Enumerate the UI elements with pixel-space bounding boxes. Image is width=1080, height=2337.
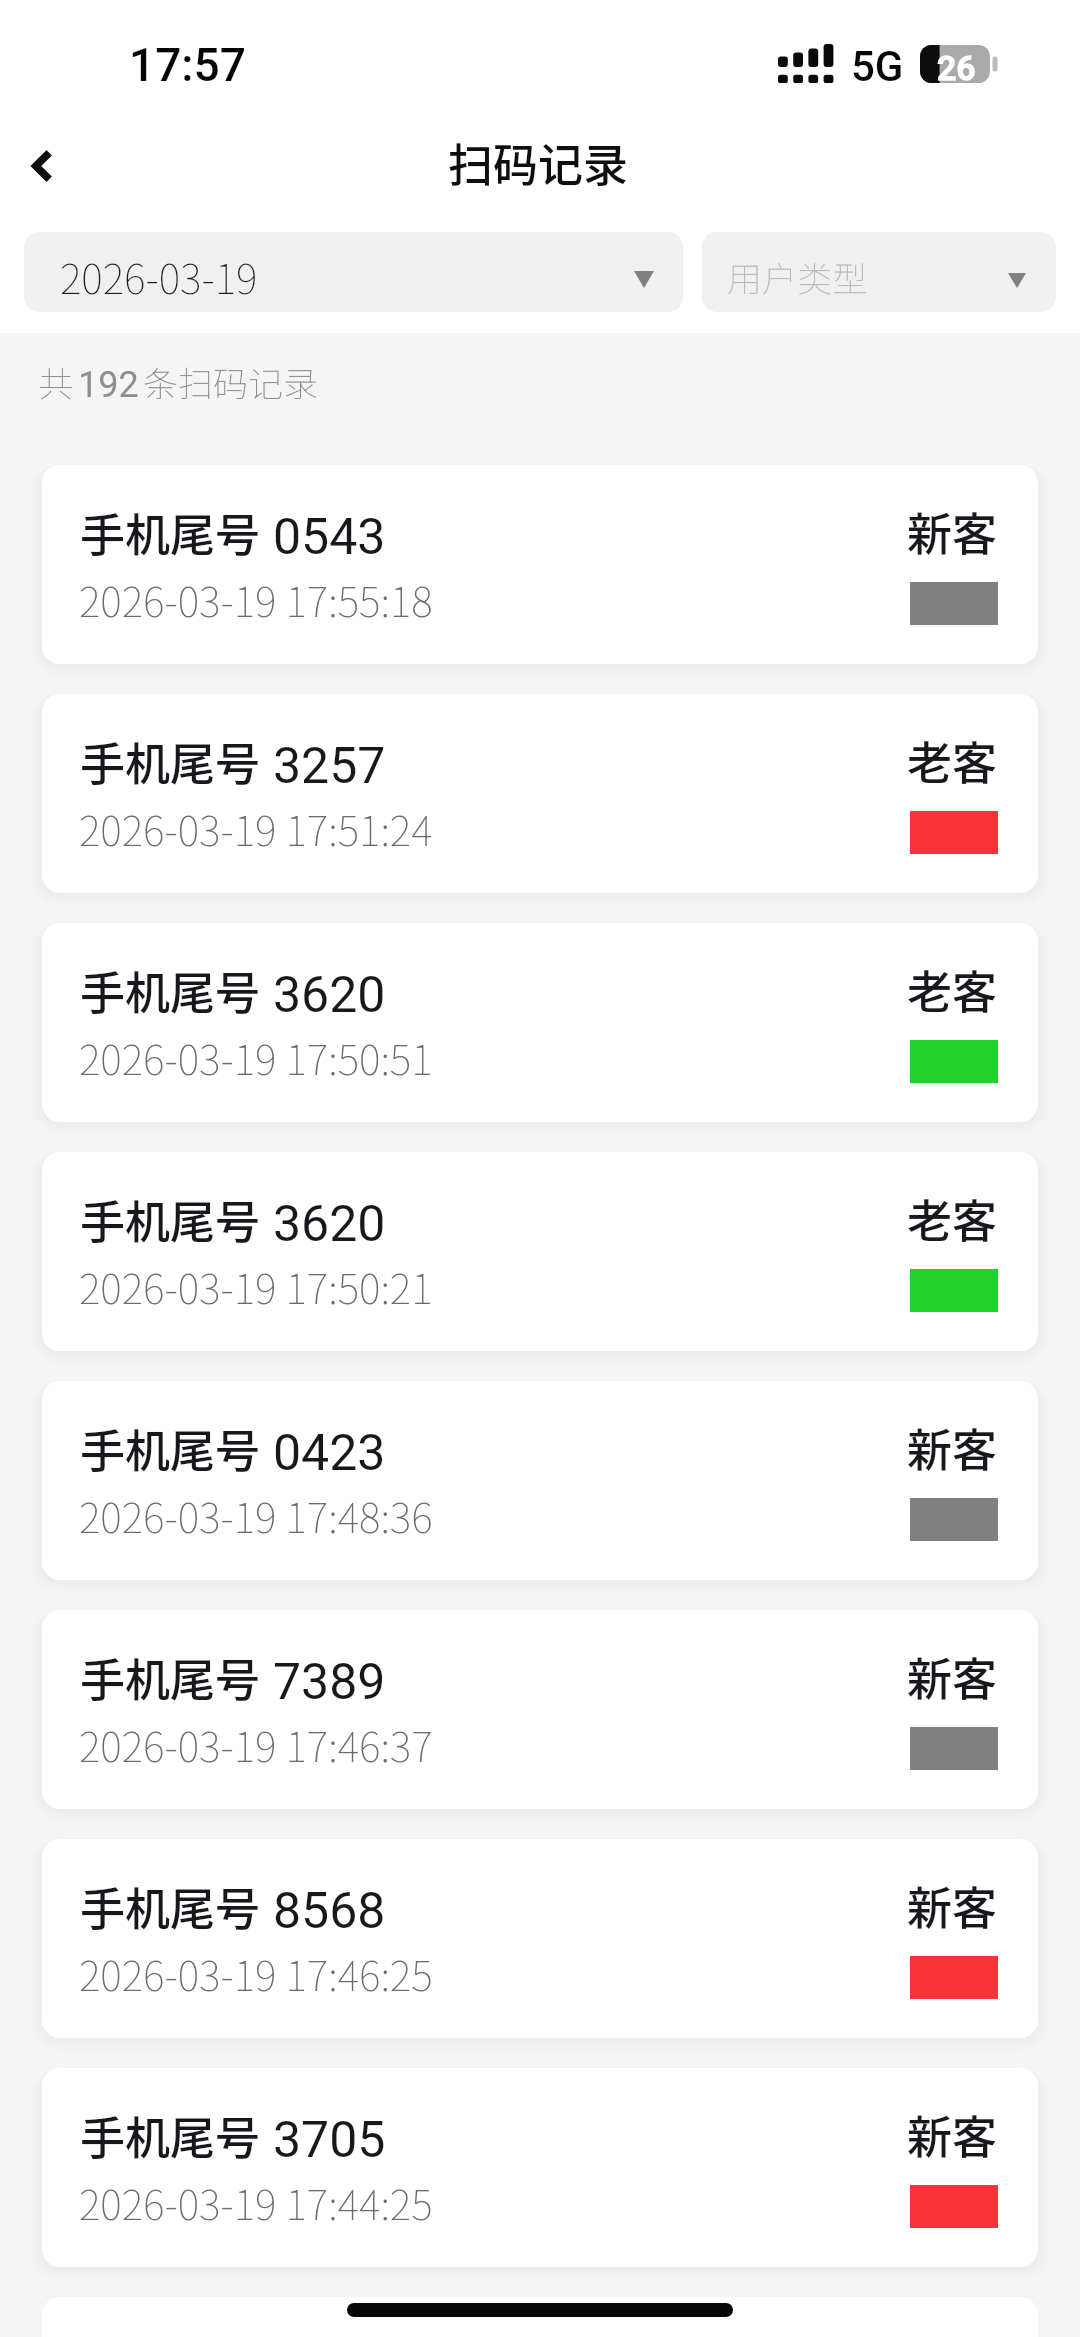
button[interactable]: 用户类型 xyxy=(702,232,1056,312)
staticText: 0543 xyxy=(273,508,386,567)
staticText: 用户类型 xyxy=(727,251,868,302)
staticText: 新客 xyxy=(907,2102,998,2167)
staticText: 手机尾号 xyxy=(80,500,261,565)
staticText: 新客 xyxy=(907,499,998,564)
button[interactable]: 2026-03-19 xyxy=(24,232,683,312)
staticText: 3257 xyxy=(273,737,386,796)
staticText: 192 xyxy=(78,364,139,406)
button[interactable]: 手机尾号 xyxy=(42,923,1038,1122)
staticText: 新客 xyxy=(907,1644,998,1709)
staticText: 条扫码记录 xyxy=(143,356,319,407)
button[interactable]: Back xyxy=(0,123,82,219)
button[interactable]: 手机尾号 xyxy=(42,1152,1038,1351)
button[interactable]: 手机尾号 xyxy=(42,2068,1038,2267)
staticText: 手机尾号 xyxy=(80,958,261,1023)
staticText: 2026-03-19 17:48:36 xyxy=(79,1485,433,1544)
button[interactable]: 手机尾号 xyxy=(42,1381,1038,1580)
staticText: 26 xyxy=(937,48,976,86)
staticText: 新客 xyxy=(907,1873,998,1938)
staticText: 手机尾号 xyxy=(80,1416,261,1481)
staticText: 手机尾号 xyxy=(80,2103,261,2168)
staticText: 3620 xyxy=(273,1195,386,1254)
staticText: 3705 xyxy=(273,2111,386,2170)
staticText: 老客 xyxy=(907,1186,998,1251)
staticText: 2026-03-19 17:50:51 xyxy=(79,1027,433,1086)
button[interactable]: 手机尾号 xyxy=(42,1839,1038,2038)
staticText: 手机尾号 xyxy=(80,1874,261,1939)
staticText: 2026-03-19 17:46:25 xyxy=(79,1943,433,2002)
staticText: 共 xyxy=(38,356,74,407)
staticText: 3620 xyxy=(273,966,386,1025)
button[interactable]: 手机尾号 xyxy=(42,694,1038,893)
staticText: 8568 xyxy=(273,1882,386,1941)
staticText: 2026-03-19 17:55:18 xyxy=(79,569,433,628)
staticText: 2026-03-19 17:46:37 xyxy=(79,1714,433,1773)
staticText: 5G xyxy=(851,42,904,91)
staticText: 7389 xyxy=(273,1653,386,1712)
button[interactable]: 手机尾号 xyxy=(42,465,1038,664)
button[interactable]: 手机尾号 xyxy=(42,1610,1038,1809)
staticText: 2026-03-19 17:44:25 xyxy=(79,2172,433,2231)
staticText: 手机尾号 xyxy=(80,1187,261,1252)
staticText: 老客 xyxy=(907,957,998,1022)
staticText: 新客 xyxy=(907,1415,998,1480)
staticText: 2026-03-19 17:51:24 xyxy=(79,798,433,857)
staticText: 手机尾号 xyxy=(80,1645,261,1710)
staticText: 手机尾号 xyxy=(80,729,261,794)
staticText: 扫码记录 xyxy=(448,130,629,195)
staticText: 2026-03-19 17:50:21 xyxy=(79,1256,433,1315)
staticText: 17:57 xyxy=(129,38,246,92)
staticText: 2026-03-19 xyxy=(60,246,258,305)
staticText: 0423 xyxy=(273,1424,386,1483)
staticText: 老客 xyxy=(907,728,998,793)
